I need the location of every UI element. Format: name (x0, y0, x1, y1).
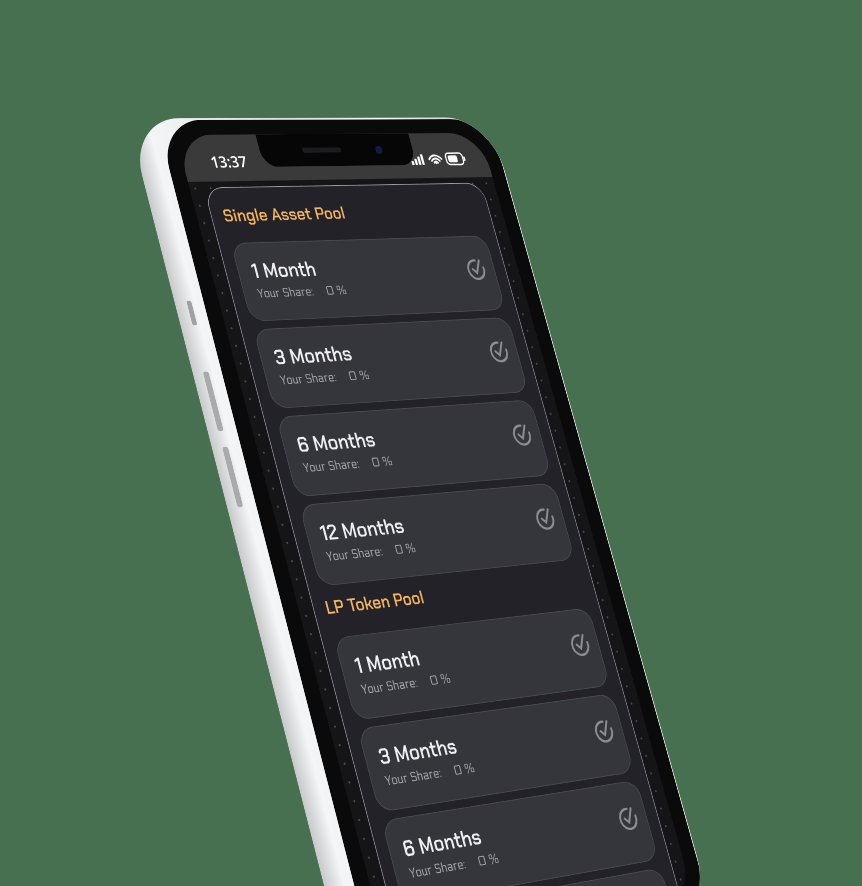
staticText: Your Share: (325, 544, 385, 565)
staticText: Your Share: (279, 370, 339, 388)
other: Select 1 Month (568, 632, 594, 658)
other: Select 1 Month (464, 258, 490, 281)
other: Select 6 Months (616, 805, 642, 833)
button[interactable]: Single Asset Pool (220, 202, 348, 227)
staticText: LP Token Pool (323, 586, 427, 620)
button[interactable]: 3 Months (253, 317, 529, 409)
button[interactable]: 1 Month (333, 607, 610, 721)
staticText: Single Asset Pool (220, 202, 348, 227)
other: Select 3 Months (592, 718, 618, 745)
button[interactable]: 1 Month (230, 235, 506, 322)
button[interactable]: 12 Months (299, 483, 575, 587)
staticText: 0 % (476, 850, 501, 870)
other: Select 12 Months (533, 506, 559, 532)
button[interactable]: 6 Months (381, 780, 659, 886)
staticText: 0 % (347, 368, 371, 384)
staticText: 3 Months (271, 340, 355, 370)
other: Select 3 Months (487, 340, 512, 364)
staticText: 0 % (393, 540, 418, 558)
staticText: Your Share: (301, 456, 362, 476)
staticText: 1 Month (351, 644, 423, 679)
staticText: Your Share: (383, 765, 444, 789)
other: Select 6 Months (510, 422, 535, 448)
staticText: 6 Months (294, 425, 379, 458)
button[interactable]: LP Token Pool (323, 586, 427, 620)
staticText: 1 Month (248, 255, 319, 284)
staticText: 0 % (324, 283, 349, 298)
button[interactable]: 3 Months (357, 693, 634, 813)
staticText: 6 Months (399, 822, 485, 863)
staticText: 0 % (428, 671, 453, 689)
staticText: Your Share: (408, 856, 468, 882)
staticText: 13:37 (208, 151, 250, 172)
staticText: Your Share: (359, 675, 420, 698)
staticText: 0 % (452, 760, 477, 779)
staticText: 0 % (370, 454, 394, 470)
staticText: 3 Months (375, 731, 460, 770)
staticText: 12 Months (317, 512, 407, 546)
button[interactable]: 12 Months (405, 867, 671, 886)
button[interactable]: 6 Months (276, 399, 552, 497)
staticText: Your Share: (256, 284, 316, 301)
